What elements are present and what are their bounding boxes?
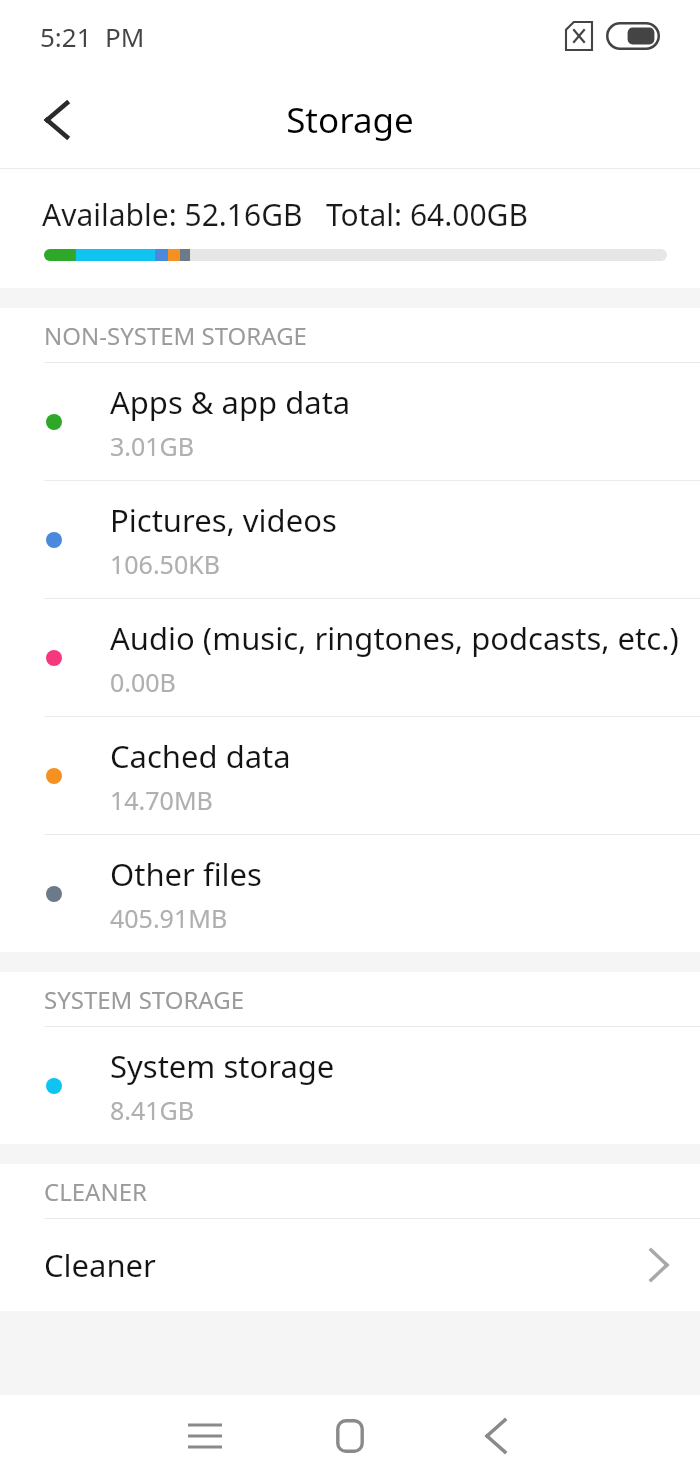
- staticText: Cached data: [110, 735, 291, 777]
- staticText: Audio (music, ringtones, podcasts, etc.): [110, 617, 679, 659]
- staticText: 106.50KB: [110, 547, 220, 581]
- button[interactable]: Other files: [0, 835, 700, 952]
- staticText: 14.70MB: [110, 783, 213, 817]
- staticText: Pictures, videos: [110, 499, 337, 541]
- staticText: System storage: [110, 1045, 335, 1087]
- button[interactable]: Recent apps: [165, 1396, 245, 1476]
- button[interactable]: Cleaner: [0, 1219, 700, 1311]
- staticText: 3.01GB: [110, 429, 195, 463]
- staticText: SYSTEM STORAGE: [44, 983, 245, 1016]
- button[interactable]: Audio (music, ringtones, podcasts, etc.): [0, 599, 700, 717]
- staticText: NON-SYSTEM STORAGE: [44, 319, 307, 352]
- staticText: Apps & app data: [110, 381, 351, 423]
- button[interactable]: Back: [456, 1396, 536, 1476]
- staticText: 5:21 PM: [40, 19, 145, 54]
- staticText: Cleaner: [44, 1244, 156, 1286]
- staticText: CLEANER: [44, 1175, 147, 1208]
- staticText: 8.41GB: [110, 1093, 195, 1127]
- button[interactable]: Home: [310, 1396, 390, 1476]
- staticText: 405.91MB: [110, 901, 228, 935]
- staticText: Storage: [286, 96, 414, 144]
- button[interactable]: Apps & app data: [0, 363, 700, 481]
- button[interactable]: System storage: [0, 1027, 700, 1144]
- staticText: 0.00B: [110, 665, 176, 699]
- button[interactable]: Pictures, videos: [0, 481, 700, 599]
- staticText: Other files: [110, 853, 262, 895]
- staticText: Available: 52.16GB Total: 64.00GB: [42, 194, 528, 235]
- button[interactable]: Cached data: [0, 717, 700, 835]
- button[interactable]: Back: [17, 80, 97, 160]
